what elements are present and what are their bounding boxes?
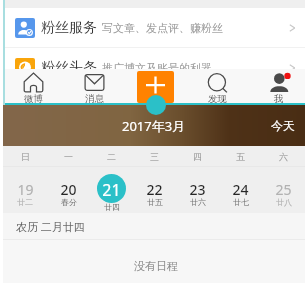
button[interactable]: 发现 (189, 69, 245, 103)
staticText: 廿六 (190, 197, 206, 207)
staticText: 粉丝服务 (41, 19, 97, 37)
staticText: 二 (107, 151, 116, 162)
button[interactable]: 微博 (5, 69, 61, 103)
button[interactable]: 19 (3, 167, 47, 213)
staticText: 发现 (208, 93, 227, 105)
button[interactable]: Compose (137, 71, 174, 103)
staticText: 一 (64, 151, 73, 162)
staticText: 农历 二月廿四 (16, 219, 85, 234)
staticText: 19 (17, 180, 34, 199)
button[interactable]: 21 (90, 167, 133, 213)
button[interactable]: 粉丝头条 (3, 48, 305, 87)
button[interactable]: 23 (176, 167, 219, 213)
staticText: 廿五 (147, 197, 163, 207)
staticText: 20 (60, 180, 77, 199)
staticText: 微博 (24, 93, 43, 105)
staticText: 四 (193, 151, 202, 162)
button[interactable]: 24 (219, 167, 262, 213)
button[interactable]: 20 (47, 167, 90, 213)
staticText: 22 (146, 180, 163, 199)
staticText: 写文章、发点评、赚粉丝 (102, 21, 223, 35)
staticText: 推广博文及账号的利器 (102, 61, 212, 75)
button[interactable]: 消息 (66, 69, 122, 103)
staticText: 我 (274, 93, 284, 105)
button[interactable]: 今天 (271, 118, 305, 133)
button[interactable]: 我 (251, 69, 307, 103)
staticText: 六 (279, 151, 288, 162)
staticText: 三 (150, 151, 159, 162)
staticText: 廿八 (276, 197, 292, 207)
button[interactable]: 25 (262, 167, 305, 213)
staticText: 23 (189, 180, 206, 199)
button[interactable]: 粉丝服务 (3, 8, 305, 47)
staticText: 25 (275, 180, 292, 199)
staticText: 廿二 (17, 197, 33, 207)
staticText: 廿四 (104, 202, 120, 212)
staticText: 日 (21, 151, 30, 162)
staticText: 21 (102, 179, 121, 201)
staticText: 粉丝头条 (41, 59, 97, 77)
staticText: 2017年3月 (122, 117, 186, 135)
staticText: 没有日程 (134, 259, 178, 273)
staticText: 春分 (61, 197, 77, 207)
staticText: 廿七 (233, 197, 249, 207)
staticText: 消息 (85, 93, 104, 105)
staticText: 五 (236, 151, 245, 162)
button[interactable]: 22 (133, 167, 176, 213)
staticText: 24 (232, 180, 249, 199)
